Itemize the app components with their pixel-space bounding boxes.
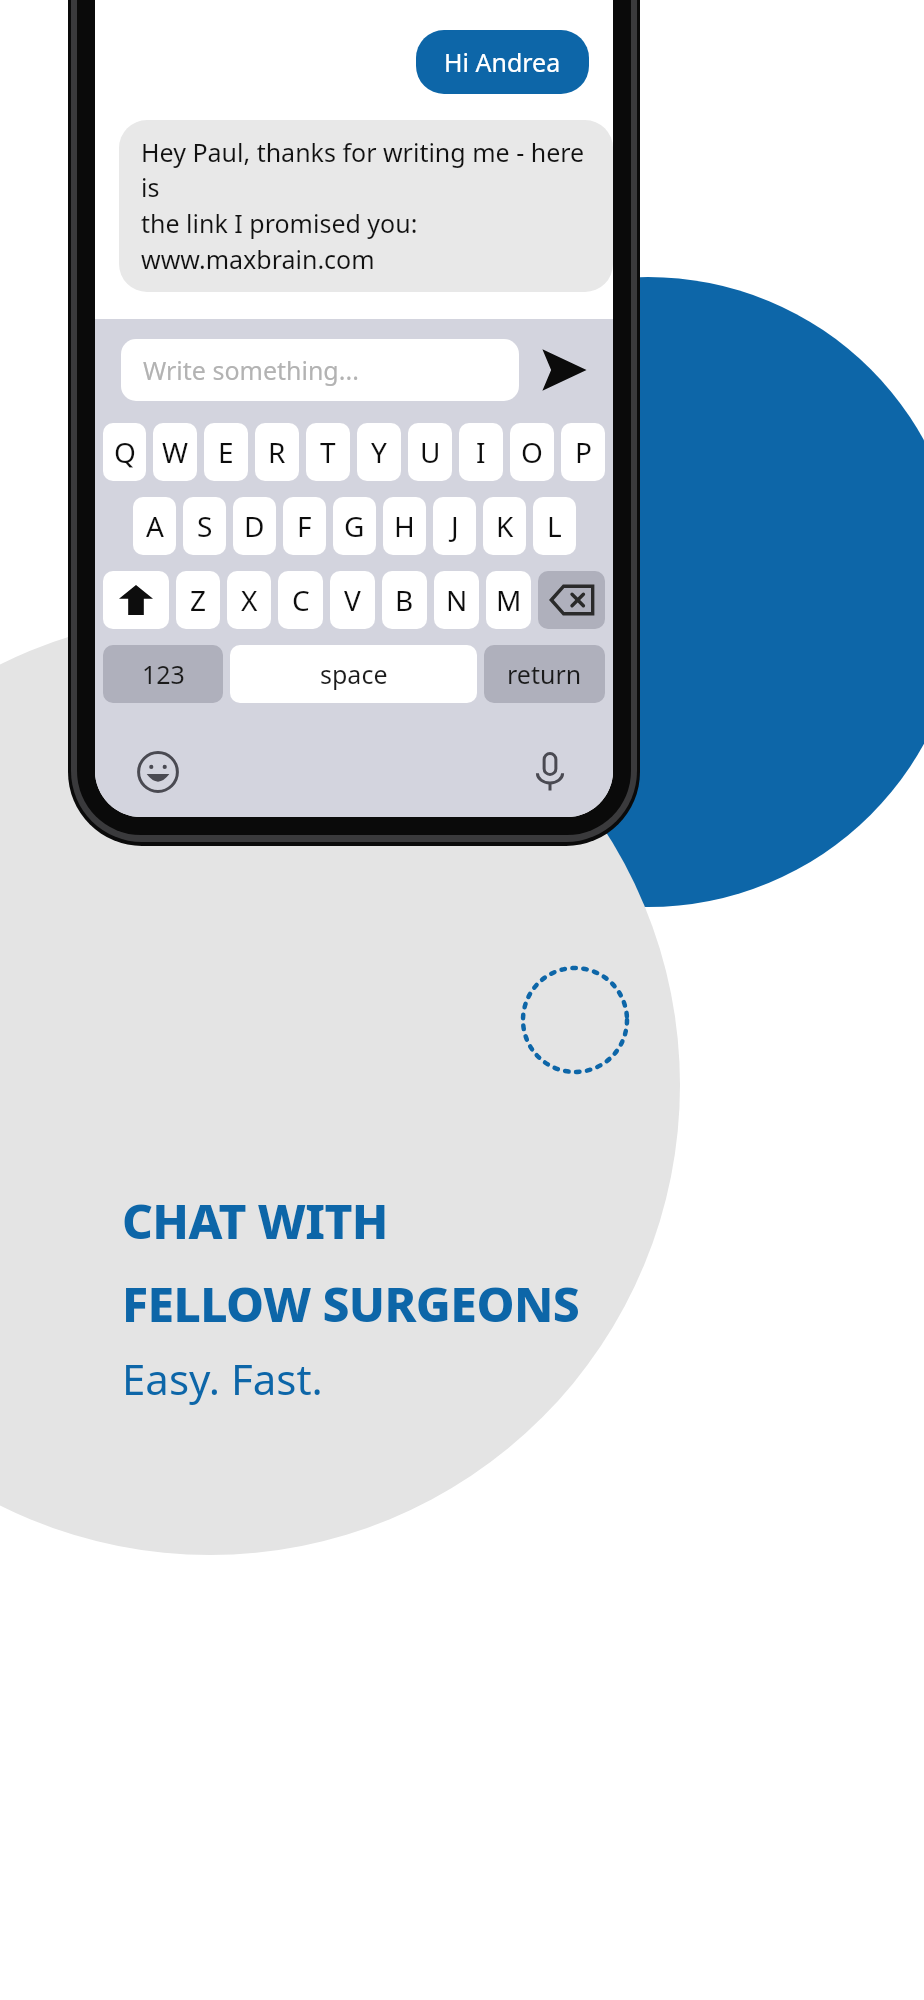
- staticText: CHAT WITH: [122, 1188, 388, 1253]
- staticText: return: [507, 657, 582, 691]
- staticText: B: [395, 581, 414, 619]
- button[interactable]: W: [153, 423, 197, 481]
- staticText: Hi Andrea: [444, 45, 561, 79]
- staticText: A: [146, 507, 164, 545]
- staticText: T: [320, 433, 336, 471]
- button[interactable]: N: [434, 571, 479, 629]
- button[interactable]: Emoji: [129, 743, 187, 801]
- staticText: Z: [190, 581, 207, 619]
- button[interactable]: Great thanks!: [375, 416, 589, 480]
- button[interactable]: D: [233, 497, 276, 555]
- button[interactable]: J: [433, 497, 476, 555]
- button[interactable]: F: [283, 497, 326, 555]
- staticText: FELLOW SURGEONS: [122, 1271, 580, 1336]
- staticText: S: [197, 507, 213, 545]
- button[interactable]: T: [306, 423, 350, 481]
- staticText: L: [547, 507, 562, 545]
- button[interactable]: Backspace: [538, 571, 605, 629]
- button[interactable]: L: [533, 497, 576, 555]
- button[interactable]: U: [408, 423, 452, 481]
- staticText: K: [496, 507, 514, 545]
- staticText: Y: [371, 433, 387, 471]
- staticText: 123: [142, 657, 185, 691]
- button[interactable]: Microphone: [521, 743, 579, 801]
- staticText: N: [446, 581, 468, 619]
- button[interactable]: Shift: [103, 571, 169, 629]
- staticText: X: [241, 581, 258, 619]
- button[interactable]: 123: [103, 645, 223, 703]
- button[interactable]: Write something...: [121, 339, 519, 401]
- button[interactable]: A: [133, 497, 176, 555]
- button[interactable]: C: [278, 571, 323, 629]
- staticText: Hey Paul, thanks for writing me - here i…: [141, 135, 591, 277]
- staticText: Q: [114, 433, 136, 471]
- button[interactable]: O: [510, 423, 554, 481]
- staticText: Have fun reading!: [141, 337, 351, 371]
- button[interactable]: Hi Andrea: [416, 30, 589, 94]
- staticText: E: [218, 433, 234, 471]
- staticText: M: [496, 581, 522, 619]
- button[interactable]: Have fun reading!: [119, 322, 373, 386]
- staticText: W: [162, 433, 189, 471]
- button[interactable]: Q: [103, 423, 146, 481]
- button[interactable]: K: [483, 497, 526, 555]
- button[interactable]: Y: [357, 423, 401, 481]
- staticText: O: [521, 433, 543, 471]
- button[interactable]: M: [486, 571, 531, 629]
- staticText: R: [268, 433, 286, 471]
- button[interactable]: X: [227, 571, 271, 629]
- staticText: D: [244, 507, 265, 545]
- staticText: Great thanks!: [403, 431, 561, 465]
- button[interactable]: Hey Paul, thanks for writing me - here i…: [119, 120, 613, 292]
- button[interactable]: Z: [176, 571, 220, 629]
- staticText: space: [320, 657, 388, 691]
- button[interactable]: space: [230, 645, 477, 703]
- staticText: H: [394, 507, 415, 545]
- staticText: Write something...: [143, 353, 359, 387]
- staticText: P: [575, 433, 592, 471]
- button[interactable]: B: [382, 571, 427, 629]
- button[interactable]: S: [183, 497, 226, 555]
- button[interactable]: G: [333, 497, 376, 555]
- button[interactable]: return: [484, 645, 605, 703]
- button[interactable]: I: [459, 423, 503, 481]
- staticText: F: [297, 507, 312, 545]
- button[interactable]: P: [561, 423, 605, 481]
- staticText: I: [476, 433, 486, 471]
- staticText: V: [344, 581, 361, 619]
- button[interactable]: V: [330, 571, 375, 629]
- staticText: J: [451, 507, 459, 545]
- button[interactable]: H: [383, 497, 426, 555]
- button[interactable]: Send: [535, 341, 593, 399]
- button[interactable]: E: [204, 423, 248, 481]
- staticText: C: [292, 581, 310, 619]
- button[interactable]: R: [255, 423, 299, 481]
- staticText: Easy. Fast.: [122, 1350, 323, 1407]
- staticText: G: [344, 507, 365, 545]
- staticText: U: [420, 433, 441, 471]
